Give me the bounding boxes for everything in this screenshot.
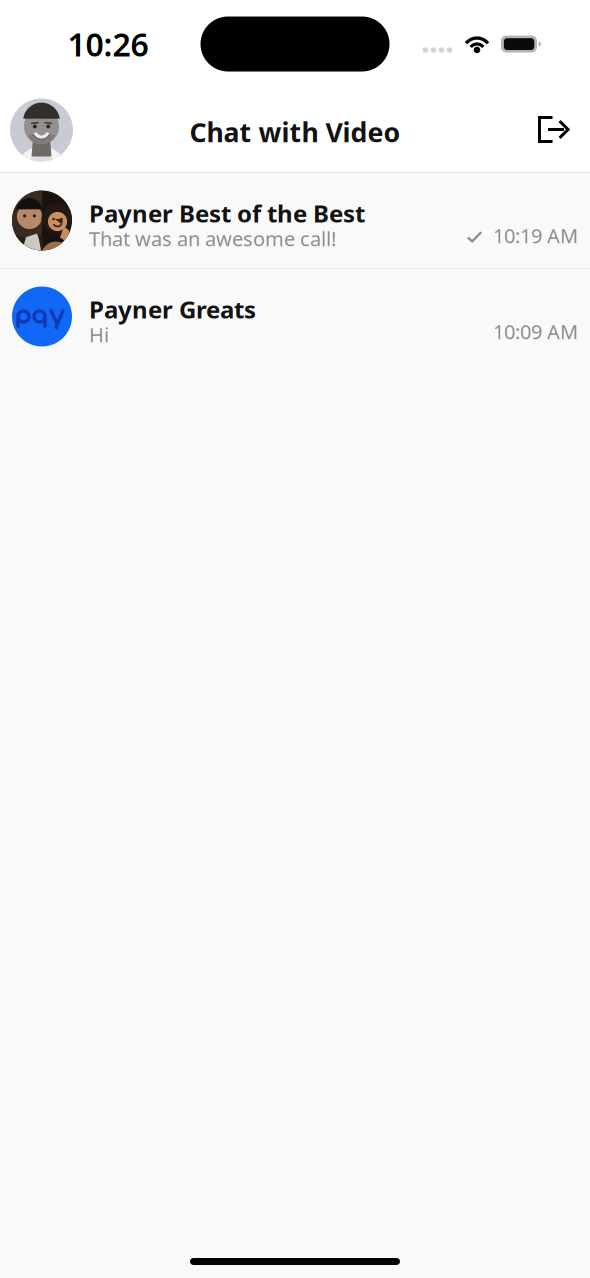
button[interactable]: Sign out [538,116,590,144]
staticText: 10:19 AM [493,222,578,249]
staticText: Payner Best of the Best [89,197,365,229]
button[interactable]: Payner Best of the Best [0,173,590,268]
staticText: Payner Greats [89,293,256,325]
staticText: Chat with Video [189,114,400,150]
button[interactable]: Payner Greats [0,269,590,364]
staticText: That was an awesome call! [89,225,336,252]
button[interactable]: Profile [0,98,73,161]
staticText: 10:26 [67,23,148,65]
staticText: 10:09 AM [493,318,578,345]
staticText: Hi [89,321,109,348]
